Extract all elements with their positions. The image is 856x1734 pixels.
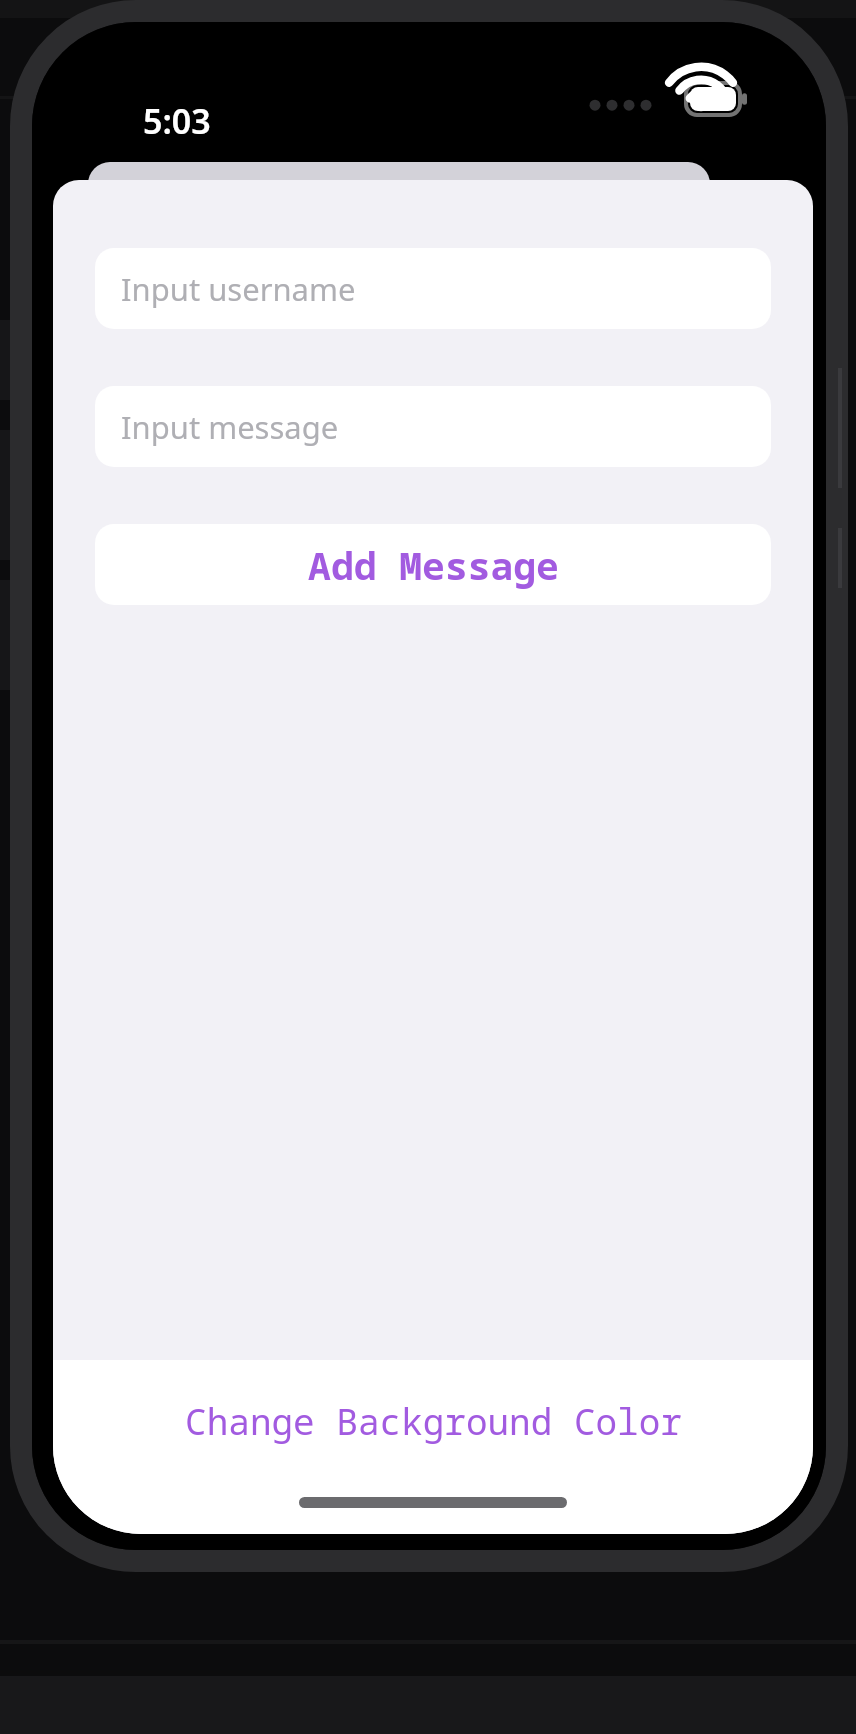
- staticText: Change Background Color: [185, 1397, 682, 1446]
- button[interactable]: Input message: [95, 386, 771, 467]
- staticText: Input username: [121, 268, 356, 310]
- staticText: Add Message: [308, 539, 559, 591]
- other: Home indicator: [299, 1497, 567, 1508]
- button[interactable]: Input username: [95, 248, 771, 329]
- staticText: Input message: [121, 406, 339, 448]
- button[interactable]: Change Background Color: [53, 1360, 813, 1482]
- button[interactable]: Add Message: [95, 524, 771, 605]
- staticText: 5:03: [143, 98, 211, 144]
